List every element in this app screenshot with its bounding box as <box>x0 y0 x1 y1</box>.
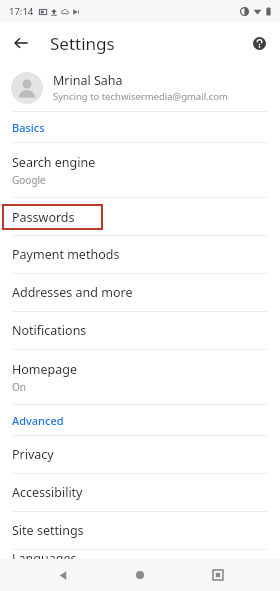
button[interactable]: Payment methods <box>0 236 280 273</box>
staticText: Search engine <box>12 154 96 171</box>
button[interactable]: Mrinal Saha <box>0 64 280 111</box>
staticText: Settings <box>50 32 115 55</box>
staticText: Accessibility <box>12 484 83 501</box>
staticText: Syncing to techwisermedia@gmail.com <box>53 90 228 103</box>
button[interactable]: Help <box>246 30 272 56</box>
staticText: Payment methods <box>12 246 120 263</box>
staticText: Basics <box>12 120 45 135</box>
button[interactable]: Addresses and more <box>0 274 280 311</box>
staticText: Addresses and more <box>12 284 133 301</box>
button[interactable]: Homepage <box>0 350 280 404</box>
staticText: 17:14 <box>9 5 34 18</box>
button[interactable]: Recent apps <box>203 560 233 590</box>
button[interactable]: Privacy <box>0 436 280 473</box>
button[interactable]: Search engine <box>0 143 280 197</box>
staticText: Notifications <box>12 322 87 339</box>
button[interactable]: Languages <box>0 550 280 559</box>
staticText: Google <box>12 173 46 187</box>
staticText: Advanced <box>12 413 64 428</box>
button[interactable]: Passwords <box>0 198 280 235</box>
button[interactable]: Accessibility <box>0 474 280 511</box>
staticText: Passwords <box>12 209 75 226</box>
button[interactable]: Site settings <box>0 512 280 549</box>
staticText: Homepage <box>12 361 78 378</box>
staticText: Privacy <box>12 446 54 463</box>
button[interactable]: Back <box>8 30 34 56</box>
staticText: Site settings <box>12 522 84 539</box>
staticText: On <box>12 380 26 394</box>
button[interactable]: Notifications <box>0 312 280 349</box>
staticText: Mrinal Saha <box>53 72 123 89</box>
button[interactable]: Back <box>48 560 78 590</box>
button[interactable]: Home <box>125 560 155 590</box>
staticText: Languages <box>12 550 77 559</box>
